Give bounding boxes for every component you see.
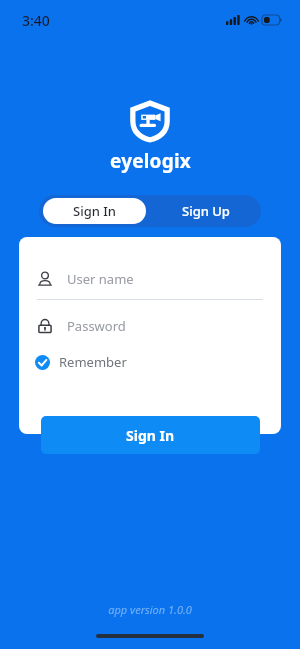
button[interactable]: Sign In: [41, 416, 260, 454]
button[interactable]: Sign In: [43, 198, 146, 224]
staticText: 3:40: [22, 11, 50, 30]
staticText: Remember: [59, 353, 127, 371]
staticText: User name: [67, 270, 134, 288]
staticText: Sign Up: [182, 202, 230, 220]
staticText: app version 1.0.0: [108, 602, 192, 617]
button[interactable]: User name: [37, 259, 263, 299]
staticText: eyelogix: [110, 148, 191, 174]
staticText: Sign In: [126, 426, 175, 445]
button[interactable]: Remember: [35, 348, 127, 376]
button[interactable]: Password: [37, 310, 263, 342]
button[interactable]: Sign Up: [150, 195, 261, 227]
staticText: Sign In: [73, 202, 117, 220]
staticText: Password: [67, 317, 126, 335]
